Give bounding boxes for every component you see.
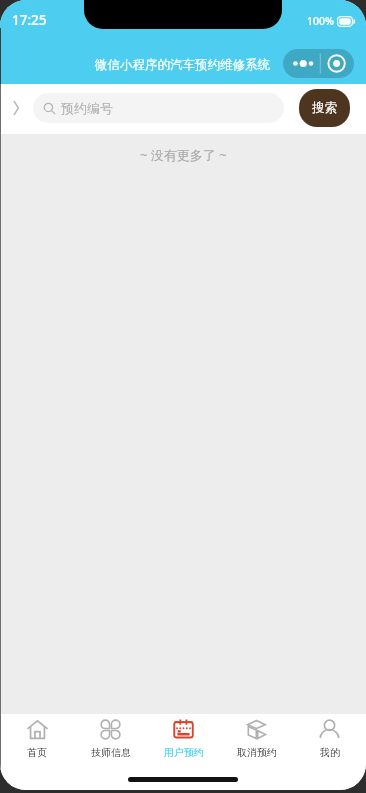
staticText: 搜索 xyxy=(312,100,337,116)
button[interactable]: Expand filters xyxy=(10,98,24,118)
staticText: 首页 xyxy=(27,746,47,759)
button[interactable]: 取消预约 xyxy=(220,714,293,764)
button[interactable]: 技师信息 xyxy=(74,714,147,764)
staticText: 微信小程序的汽车预约维修系统 xyxy=(95,57,270,73)
button[interactable]: 我的 xyxy=(293,714,366,764)
button[interactable]: 预约编号 xyxy=(33,93,284,123)
staticText: ~ 没有更多了 ~ xyxy=(140,146,227,164)
staticText: 技师信息 xyxy=(91,746,131,759)
staticText: 取消预约 xyxy=(237,746,277,759)
staticText: 我的 xyxy=(320,746,340,759)
button[interactable]: More options xyxy=(283,49,354,78)
button[interactable]: 首页 xyxy=(0,714,74,764)
staticText: 预约编号 xyxy=(61,100,113,116)
staticText: 17:25 xyxy=(12,11,47,29)
button[interactable]: 用户预约 xyxy=(147,714,220,764)
staticText: 用户预约 xyxy=(164,746,204,759)
button[interactable]: 搜索 xyxy=(299,89,350,127)
staticText: 100% xyxy=(307,14,334,28)
